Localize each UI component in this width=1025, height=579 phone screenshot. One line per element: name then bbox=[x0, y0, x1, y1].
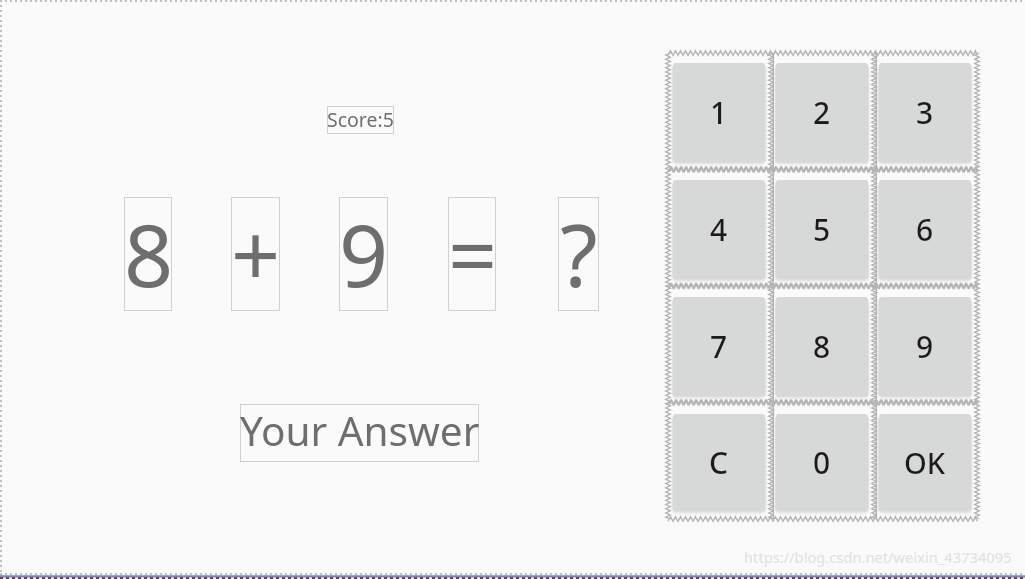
button[interactable]: 0 bbox=[776, 414, 868, 511]
staticText: 0 bbox=[813, 442, 831, 483]
staticText: 9 bbox=[916, 326, 934, 367]
button[interactable]: C bbox=[673, 414, 765, 511]
staticText: 4 bbox=[710, 209, 728, 250]
button[interactable]: 9 bbox=[879, 297, 971, 396]
button[interactable]: OK bbox=[879, 414, 971, 511]
button[interactable]: 8 bbox=[776, 297, 868, 396]
button[interactable]: 1 bbox=[673, 63, 765, 162]
staticText: 2 bbox=[813, 92, 831, 133]
staticText: ? bbox=[560, 195, 598, 309]
button[interactable]: 4 bbox=[673, 180, 765, 279]
button[interactable] bbox=[327, 106, 394, 134]
staticText: 3 bbox=[916, 92, 934, 133]
staticText: 7 bbox=[710, 326, 728, 367]
button[interactable]: 6 bbox=[879, 180, 971, 279]
staticText: = bbox=[448, 195, 496, 309]
button[interactable]: Your Answer bbox=[240, 404, 479, 462]
staticText: 8 bbox=[813, 326, 831, 367]
staticText: 5 bbox=[813, 209, 831, 250]
staticText: 6 bbox=[916, 209, 934, 250]
button[interactable]: 2 bbox=[776, 63, 868, 162]
staticText: + bbox=[231, 195, 280, 309]
staticText: Your Answer bbox=[240, 403, 480, 458]
button[interactable]: 5 bbox=[776, 180, 868, 279]
button[interactable]: 3 bbox=[879, 63, 971, 162]
button[interactable]: 7 bbox=[673, 297, 765, 396]
staticText: 9 bbox=[339, 195, 388, 309]
staticText: OK bbox=[904, 443, 946, 482]
staticText: Score:5 bbox=[327, 106, 394, 133]
staticText: 1 bbox=[710, 92, 728, 133]
staticText: C bbox=[709, 442, 729, 483]
staticText: 8 bbox=[124, 195, 172, 309]
staticText: https://blog.csdn.net/weixin_43734095 bbox=[744, 547, 1012, 567]
